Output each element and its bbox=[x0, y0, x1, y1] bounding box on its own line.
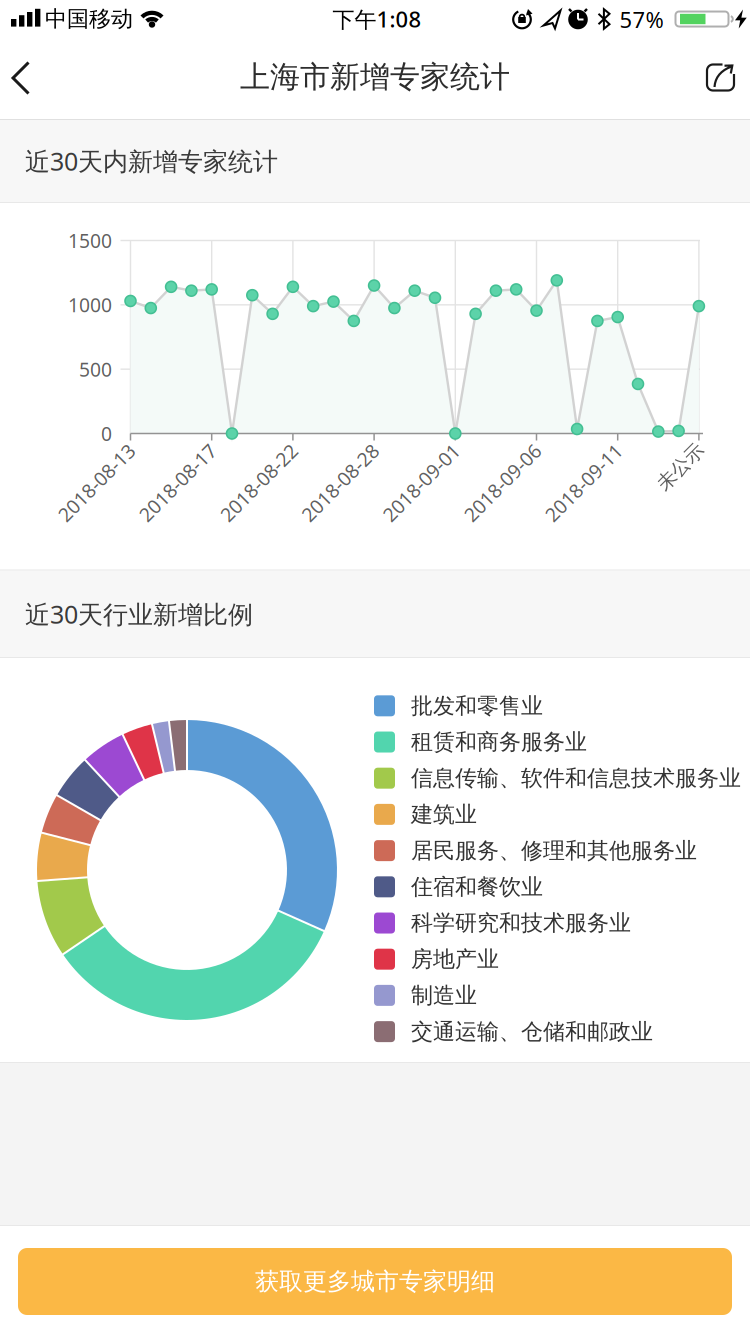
staticText: 2018-08-22 bbox=[209, 469, 309, 496]
staticText: 租赁和商务服务业 bbox=[411, 728, 587, 756]
staticText: 建筑业 bbox=[411, 800, 477, 828]
staticText: 近30天行业新增比例 bbox=[25, 597, 253, 631]
staticText: 制造业 bbox=[411, 981, 477, 1009]
staticText: 交通运输、仓储和邮政业 bbox=[411, 1018, 653, 1045]
staticText: 2018-08-13 bbox=[46, 469, 146, 496]
staticText: 2018-09-01 bbox=[371, 469, 471, 496]
staticText: 0 bbox=[101, 420, 112, 447]
staticText: 科学研究和技术服务业 bbox=[411, 909, 631, 937]
staticText: 居民服务、修理和其他服务业 bbox=[411, 837, 697, 864]
staticText: 1500 bbox=[68, 227, 112, 254]
button[interactable]: 返回 bbox=[0, 38, 60, 118]
staticText: 1000 bbox=[68, 292, 112, 318]
staticText: 住宿和餐饮业 bbox=[411, 873, 543, 901]
staticText: 2018-08-17 bbox=[128, 469, 228, 496]
staticText: 房地产业 bbox=[411, 945, 499, 973]
staticText: 下午1:08 bbox=[332, 4, 421, 34]
staticText: 57% bbox=[619, 4, 663, 34]
staticText: 2018-08-28 bbox=[290, 469, 390, 496]
staticText: 500 bbox=[79, 356, 112, 382]
staticText: 未公示 bbox=[652, 455, 709, 479]
button[interactable]: 分享 bbox=[706, 62, 736, 92]
staticText: 批发和零售业 bbox=[411, 692, 543, 720]
staticText: 信息传输、软件和信息技术服务业 bbox=[411, 764, 741, 792]
staticText: 获取更多城市专家明细 bbox=[255, 1266, 495, 1297]
staticText: 上海市新增专家统计 bbox=[240, 58, 510, 96]
staticText: 2018-09-06 bbox=[452, 469, 552, 496]
staticText: 近30天内新增专家统计 bbox=[25, 144, 278, 178]
staticText: 中国移动 bbox=[45, 5, 133, 33]
button[interactable]: 获取更多城市专家明细 bbox=[18, 1248, 732, 1315]
staticText: 2018-09-11 bbox=[534, 469, 634, 496]
